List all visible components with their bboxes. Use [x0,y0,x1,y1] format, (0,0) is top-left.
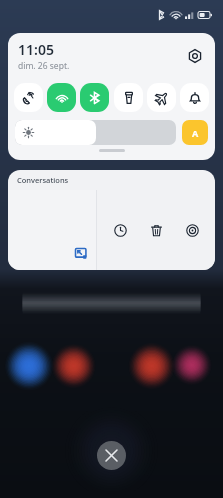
button[interactable]: Wi-Fi [47,83,76,112]
button[interactable]: Airplane mode [147,83,176,112]
staticText: 11:05 [18,40,54,59]
staticText: dim. 26 sept. [18,60,70,72]
button[interactable]: Do not disturb [180,83,209,112]
button[interactable]: Mobile data [14,83,43,112]
staticText: A [192,127,199,139]
button[interactable]: Bluetooth [80,83,109,112]
button[interactable]: Settings [184,45,206,67]
button[interactable]: A [182,120,208,145]
button[interactable] [15,120,176,145]
button[interactable]: Snooze [107,217,133,243]
button[interactable]: Settings [179,217,205,243]
staticText: Conversations [17,175,69,185]
button[interactable]: Delete [143,217,169,243]
button[interactable]: Flashlight [114,83,143,112]
button[interactable] [8,190,96,270]
button[interactable]: Close [97,441,126,470]
